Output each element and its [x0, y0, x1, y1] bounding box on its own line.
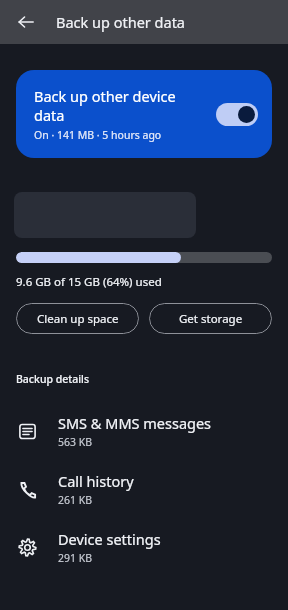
staticText: Device settings — [58, 529, 161, 549]
staticText: SMS & MMS messages — [58, 413, 212, 433]
button[interactable]: Clean up space — [16, 303, 139, 334]
staticText: 291 KB — [58, 551, 93, 565]
staticText: Get storage — [179, 311, 243, 327]
staticText: 563 KB — [58, 435, 93, 449]
staticText: 9.6 GB of 15 GB (64%) used — [16, 274, 162, 290]
staticText: Call history — [58, 471, 134, 491]
staticText: Clean up space — [37, 311, 119, 327]
button[interactable]: Device settings — [0, 518, 288, 576]
button[interactable]: Get storage — [149, 303, 272, 334]
staticText: On · 141 MB · 5 hours ago — [34, 128, 162, 142]
staticText: Back up other data — [56, 12, 186, 32]
button[interactable]: Back up other device data — [16, 70, 272, 158]
staticText: Back up other device data — [34, 86, 176, 125]
button[interactable]: Call history — [0, 460, 288, 518]
button[interactable]: Back — [8, 4, 44, 40]
staticText: Backup details — [16, 372, 90, 386]
button[interactable]: Back up other device data toggle — [216, 103, 258, 126]
button[interactable]: SMS & MMS messages — [0, 402, 288, 460]
staticText: 261 KB — [58, 493, 93, 507]
